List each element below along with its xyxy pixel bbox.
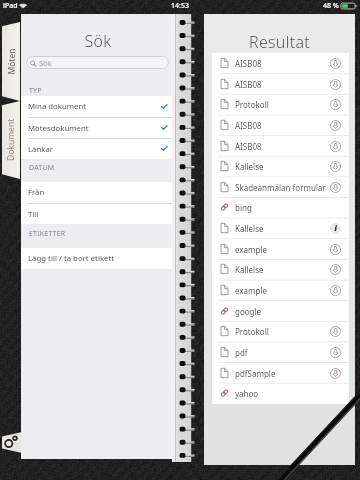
button[interactable]: pdf [212,342,349,363]
button[interactable]: Download [330,161,341,172]
staticText: Från [28,187,45,198]
staticText: example [235,244,268,255]
button[interactable]: Settings [2,432,22,453]
staticText: Protokoll [235,99,269,110]
button[interactable]: yahoo [212,383,349,404]
button[interactable]: Sök [26,56,169,69]
staticText: Kallelse [235,223,264,234]
button[interactable]: Kallelse [212,218,349,239]
button[interactable]: Mötesdokument [21,118,175,138]
staticText: AISB08 [235,141,262,152]
staticText: Skadeanmälan formular [235,182,326,193]
button[interactable]: AISB08 [212,136,349,157]
staticText: DATUM [29,163,55,173]
staticText: AISB08 [235,79,262,90]
button[interactable]: Download [330,368,341,379]
button[interactable]: example [212,239,349,260]
staticText: Sök [39,58,52,68]
button[interactable]: Download [330,99,341,110]
button[interactable]: Möten [2,22,20,101]
staticText: pdfSample [235,368,276,379]
button[interactable]: AISB08 [212,53,349,74]
button[interactable]: Kallelse [212,259,349,280]
staticText: Resultat [204,31,355,53]
staticText: pdf [235,347,248,358]
staticText: AISB08 [235,58,262,69]
button[interactable]: Skadeanmälan formular [212,177,349,198]
button[interactable]: pdfSample [212,363,349,384]
staticText: 14:53 [171,1,189,11]
button[interactable]: Till [21,204,175,224]
button[interactable]: Protokoll [212,321,349,342]
button[interactable]: Mina dokument [21,96,175,117]
staticText: google [235,306,262,317]
button[interactable]: Länkar [21,139,175,159]
button[interactable]: example [212,280,349,301]
button[interactable]: Download [330,244,341,255]
button[interactable]: bing [212,197,349,218]
staticText: 48 % [323,1,339,11]
button[interactable]: Download [330,326,341,337]
staticText: ETIKETTER [29,229,66,239]
button[interactable]: Info [330,223,341,234]
button[interactable]: Dokument [2,101,20,179]
button[interactable]: Lägg till / ta bort etikett [21,248,175,269]
staticText: Protokoll [235,326,269,337]
button[interactable]: AISB08 [212,115,349,136]
staticText: Sök [21,30,175,52]
button[interactable]: Download [330,264,341,275]
button[interactable]: Download [330,58,341,69]
staticText: Mina dokument [28,101,87,112]
staticText: Till [28,209,39,220]
staticText: Möten [5,48,17,74]
staticText: AISB08 [235,120,262,131]
button[interactable]: Från [21,182,175,203]
staticText: example [235,285,268,296]
staticText: Kallelse [235,161,264,172]
staticText: bing [235,202,252,213]
button[interactable]: google [212,301,349,322]
button[interactable]: Kallelse [212,156,349,177]
staticText: TYP [29,86,42,96]
button[interactable]: Download [330,79,341,90]
button[interactable]: Protokoll [212,94,349,115]
button[interactable]: Download [330,285,341,296]
button[interactable]: Download [330,120,341,131]
staticText: Dokument [5,118,17,161]
staticText: yahoo [235,388,259,399]
staticText: Mötesdokument [28,123,89,134]
staticText: Kallelse [235,264,264,275]
staticText: Lägg till / ta bort etikett [28,253,115,264]
staticText: iPad [3,1,18,11]
button[interactable]: Download [330,141,341,152]
staticText: Länkar [28,144,54,155]
button[interactable]: Download [330,347,341,358]
button[interactable]: AISB08 [212,74,349,95]
button[interactable]: Download [330,182,341,193]
